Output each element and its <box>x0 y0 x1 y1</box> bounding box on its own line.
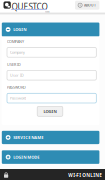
button[interactable]: Company <box>7 47 96 57</box>
button[interactable]: LOGIN <box>2 22 99 36</box>
staticText: COMPANY <box>7 39 24 44</box>
staticText: QUESTCO <box>11 1 47 12</box>
button[interactable]: LOGIN MODE <box>2 150 99 164</box>
button[interactable]: Secure connection <box>4 172 9 177</box>
button[interactable]: LOGIN <box>37 106 63 116</box>
staticText: LOGIN <box>13 27 26 32</box>
button[interactable]: ABOUT <box>75 1 99 10</box>
staticText: USER ID <box>7 62 21 67</box>
staticText: Company <box>10 50 25 55</box>
staticText: PASSWORD <box>7 85 26 90</box>
staticText: Texas <box>44 10 49 13</box>
button[interactable]: User ID <box>7 70 96 80</box>
staticText: LOGIN MODE <box>13 154 39 160</box>
staticText: WI-FI ONLINE <box>68 172 102 178</box>
button[interactable]: SERVICE NAME <box>2 131 99 144</box>
button[interactable]: Password <box>7 93 96 103</box>
staticText: SERVICE NAME <box>13 135 43 140</box>
staticText: User ID <box>10 73 24 78</box>
staticText: LOGIN <box>43 108 56 114</box>
staticText: ABOUT <box>84 3 96 7</box>
staticText: Password <box>10 96 26 101</box>
